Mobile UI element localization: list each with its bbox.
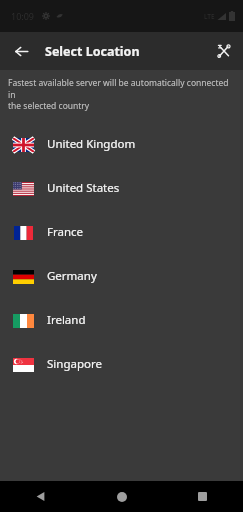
- button[interactable]: Back: [0, 481, 81, 512]
- staticText: Select Location: [45, 43, 140, 60]
- staticText: LTE: [204, 12, 215, 21]
- button[interactable]: United Kingdom: [0, 122, 243, 166]
- button[interactable]: France: [0, 210, 243, 254]
- staticText: Ireland: [47, 312, 86, 328]
- button[interactable]: Germany: [0, 254, 243, 298]
- staticText: 10:09: [11, 10, 35, 22]
- staticText: Singapore: [47, 356, 102, 372]
- button[interactable]: Home: [81, 481, 162, 512]
- staticText: France: [47, 224, 84, 240]
- button[interactable]: Ireland: [0, 298, 243, 342]
- staticText: Fastest available server will be automat…: [8, 77, 235, 112]
- staticText: United States: [47, 180, 120, 196]
- button[interactable]: Settings: [210, 37, 238, 65]
- staticText: United Kingdom: [47, 136, 136, 152]
- button[interactable]: United States: [0, 166, 243, 210]
- button[interactable]: Singapore: [0, 342, 243, 386]
- button[interactable]: Recent apps: [162, 481, 243, 512]
- button[interactable]: Back: [6, 36, 36, 66]
- staticText: Germany: [47, 268, 97, 284]
